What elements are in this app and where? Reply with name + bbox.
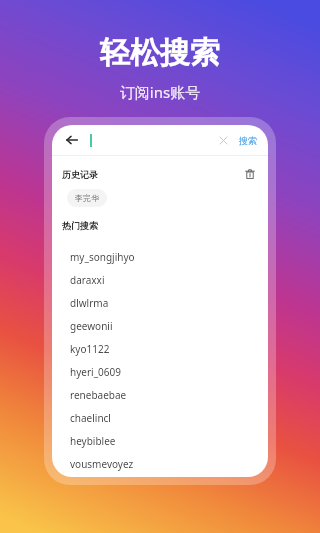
staticText: geewonii <box>70 319 113 333</box>
staticText: kyo1122 <box>70 342 110 356</box>
button[interactable]: Clear <box>213 130 233 150</box>
button[interactable]: heybiblee <box>52 429 268 452</box>
staticText: daraxxi <box>70 273 105 287</box>
button[interactable]: kyo1122 <box>52 337 268 360</box>
staticText: vousmevoyez <box>70 457 134 471</box>
button[interactable] <box>90 125 213 155</box>
staticText: dlwlrma <box>70 296 109 310</box>
staticText: 订阅ins账号 <box>0 82 320 102</box>
staticText: hyeri_0609 <box>70 365 121 379</box>
staticText: heybiblee <box>70 434 116 448</box>
button[interactable]: chaelincl <box>52 406 268 429</box>
staticText: 轻松搜索 <box>0 34 320 72</box>
button[interactable]: vousmevoyez <box>52 452 268 475</box>
staticText: 李完华 <box>75 193 99 203</box>
button[interactable]: hyeri_0609 <box>52 360 268 383</box>
staticText: renebaebae <box>70 388 127 402</box>
button[interactable]: renebaebae <box>52 383 268 406</box>
staticText: my_songjihyo <box>70 250 135 264</box>
button[interactable]: Clear history <box>242 166 258 182</box>
button[interactable]: my_songjihyo <box>52 245 268 268</box>
button[interactable]: daraxxi <box>52 268 268 291</box>
button[interactable]: 李完华 <box>67 189 107 207</box>
button[interactable]: geewonii <box>52 314 268 337</box>
staticText: 搜索 <box>239 135 257 146</box>
button[interactable]: dlwlrma <box>52 291 268 314</box>
staticText: 历史记录 <box>62 169 98 180</box>
button[interactable]: 搜索 <box>237 131 259 150</box>
staticText: 热门搜索 <box>62 220 98 231</box>
button[interactable]: Back <box>61 129 83 151</box>
staticText: chaelincl <box>70 411 111 425</box>
